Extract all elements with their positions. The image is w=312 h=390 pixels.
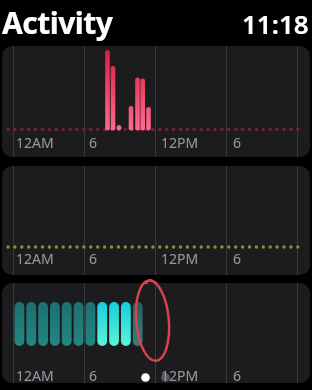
staticText: 12AM (16, 249, 54, 268)
staticText: 12PM (161, 249, 199, 268)
button[interactable]: 12AM (2, 166, 310, 275)
button[interactable]: 12AM (2, 46, 310, 157)
staticText: 12AM (16, 366, 54, 383)
staticText: 12PM (161, 133, 199, 152)
staticText: 6 (89, 249, 98, 268)
staticText: 11:18 (242, 6, 309, 41)
staticText: 6 (233, 366, 242, 383)
staticText: Activity (2, 2, 113, 43)
staticText: 6 (89, 366, 98, 383)
staticText: 6 (233, 133, 242, 152)
staticText: 6 (89, 133, 98, 152)
staticText: 6 (233, 249, 242, 268)
button[interactable]: 12AM (2, 283, 310, 383)
staticText: 12AM (16, 133, 54, 152)
staticText: 12PM (161, 366, 199, 383)
